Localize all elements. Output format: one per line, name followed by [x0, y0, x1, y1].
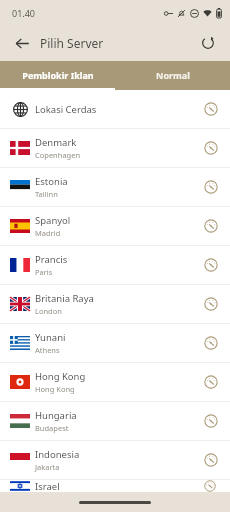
button[interactable]: Prancis	[0, 246, 230, 284]
button[interactable]: Test speed for Britania Raya	[200, 293, 222, 315]
button[interactable]: Test speed for Hungaria	[200, 410, 222, 432]
staticText: 01.40	[12, 7, 36, 19]
staticText: Spanyol	[35, 214, 71, 227]
staticText: Indonesia	[35, 448, 80, 461]
staticText: Tallinn	[35, 189, 58, 199]
button[interactable]: Yunani	[0, 324, 230, 362]
button[interactable]: Britania Raya	[0, 285, 230, 323]
staticText: Copenhagen	[35, 150, 81, 160]
staticText: Israel	[35, 480, 60, 492]
button[interactable]: Back	[8, 29, 36, 57]
button[interactable]: Pemblokir Iklan	[0, 61, 115, 88]
staticText: Yunani	[35, 331, 66, 344]
button[interactable]: Indonesia	[0, 441, 230, 479]
staticText: Lokasi Cerdas	[35, 103, 97, 116]
staticText: Paris	[35, 267, 53, 277]
button[interactable]: Test speed for Estonia	[200, 176, 222, 198]
staticText: Athens	[35, 345, 60, 355]
button[interactable]: Spanyol	[0, 207, 230, 245]
staticText: Budapest	[35, 423, 69, 433]
staticText: Pemblokir Iklan	[22, 69, 94, 81]
staticText: Normal	[156, 69, 190, 81]
button[interactable]: Normal	[115, 61, 230, 88]
button[interactable]: Test speed for Denmark	[200, 137, 222, 159]
button[interactable]: Lokasi Cerdas	[0, 90, 230, 128]
button[interactable]: Israel	[0, 480, 230, 492]
staticText: Prancis	[35, 253, 68, 266]
button[interactable]: Test speed for Prancis	[200, 254, 222, 276]
staticText: Pilih Server	[40, 35, 104, 51]
button[interactable]: Hungaria	[0, 402, 230, 440]
button[interactable]: Test speed for Yunani	[200, 332, 222, 354]
button[interactable]: Test speed for Lokasi Cerdas	[200, 98, 222, 120]
staticText: Hungaria	[35, 409, 77, 422]
staticText: Hong Kong	[35, 370, 86, 383]
staticText: Madrid	[35, 228, 61, 238]
button[interactable]: Estonia	[0, 168, 230, 206]
staticText: Britania Raya	[35, 292, 94, 305]
button[interactable]: Denmark	[0, 129, 230, 167]
button[interactable]: Test speed for Indonesia	[200, 449, 222, 471]
staticText: London	[35, 306, 62, 316]
button[interactable]: Test speed for Spanyol	[200, 215, 222, 237]
staticText: Hong Kong	[35, 384, 75, 394]
button[interactable]: Refresh	[194, 29, 222, 57]
staticText: Jakarta	[35, 462, 60, 472]
button[interactable]: Hong Kong	[0, 363, 230, 401]
staticText: Estonia	[35, 175, 68, 188]
button[interactable]: Test speed for Israel	[200, 480, 222, 492]
button[interactable]: Test speed for Hong Kong	[200, 371, 222, 393]
staticText: Denmark	[35, 136, 77, 149]
